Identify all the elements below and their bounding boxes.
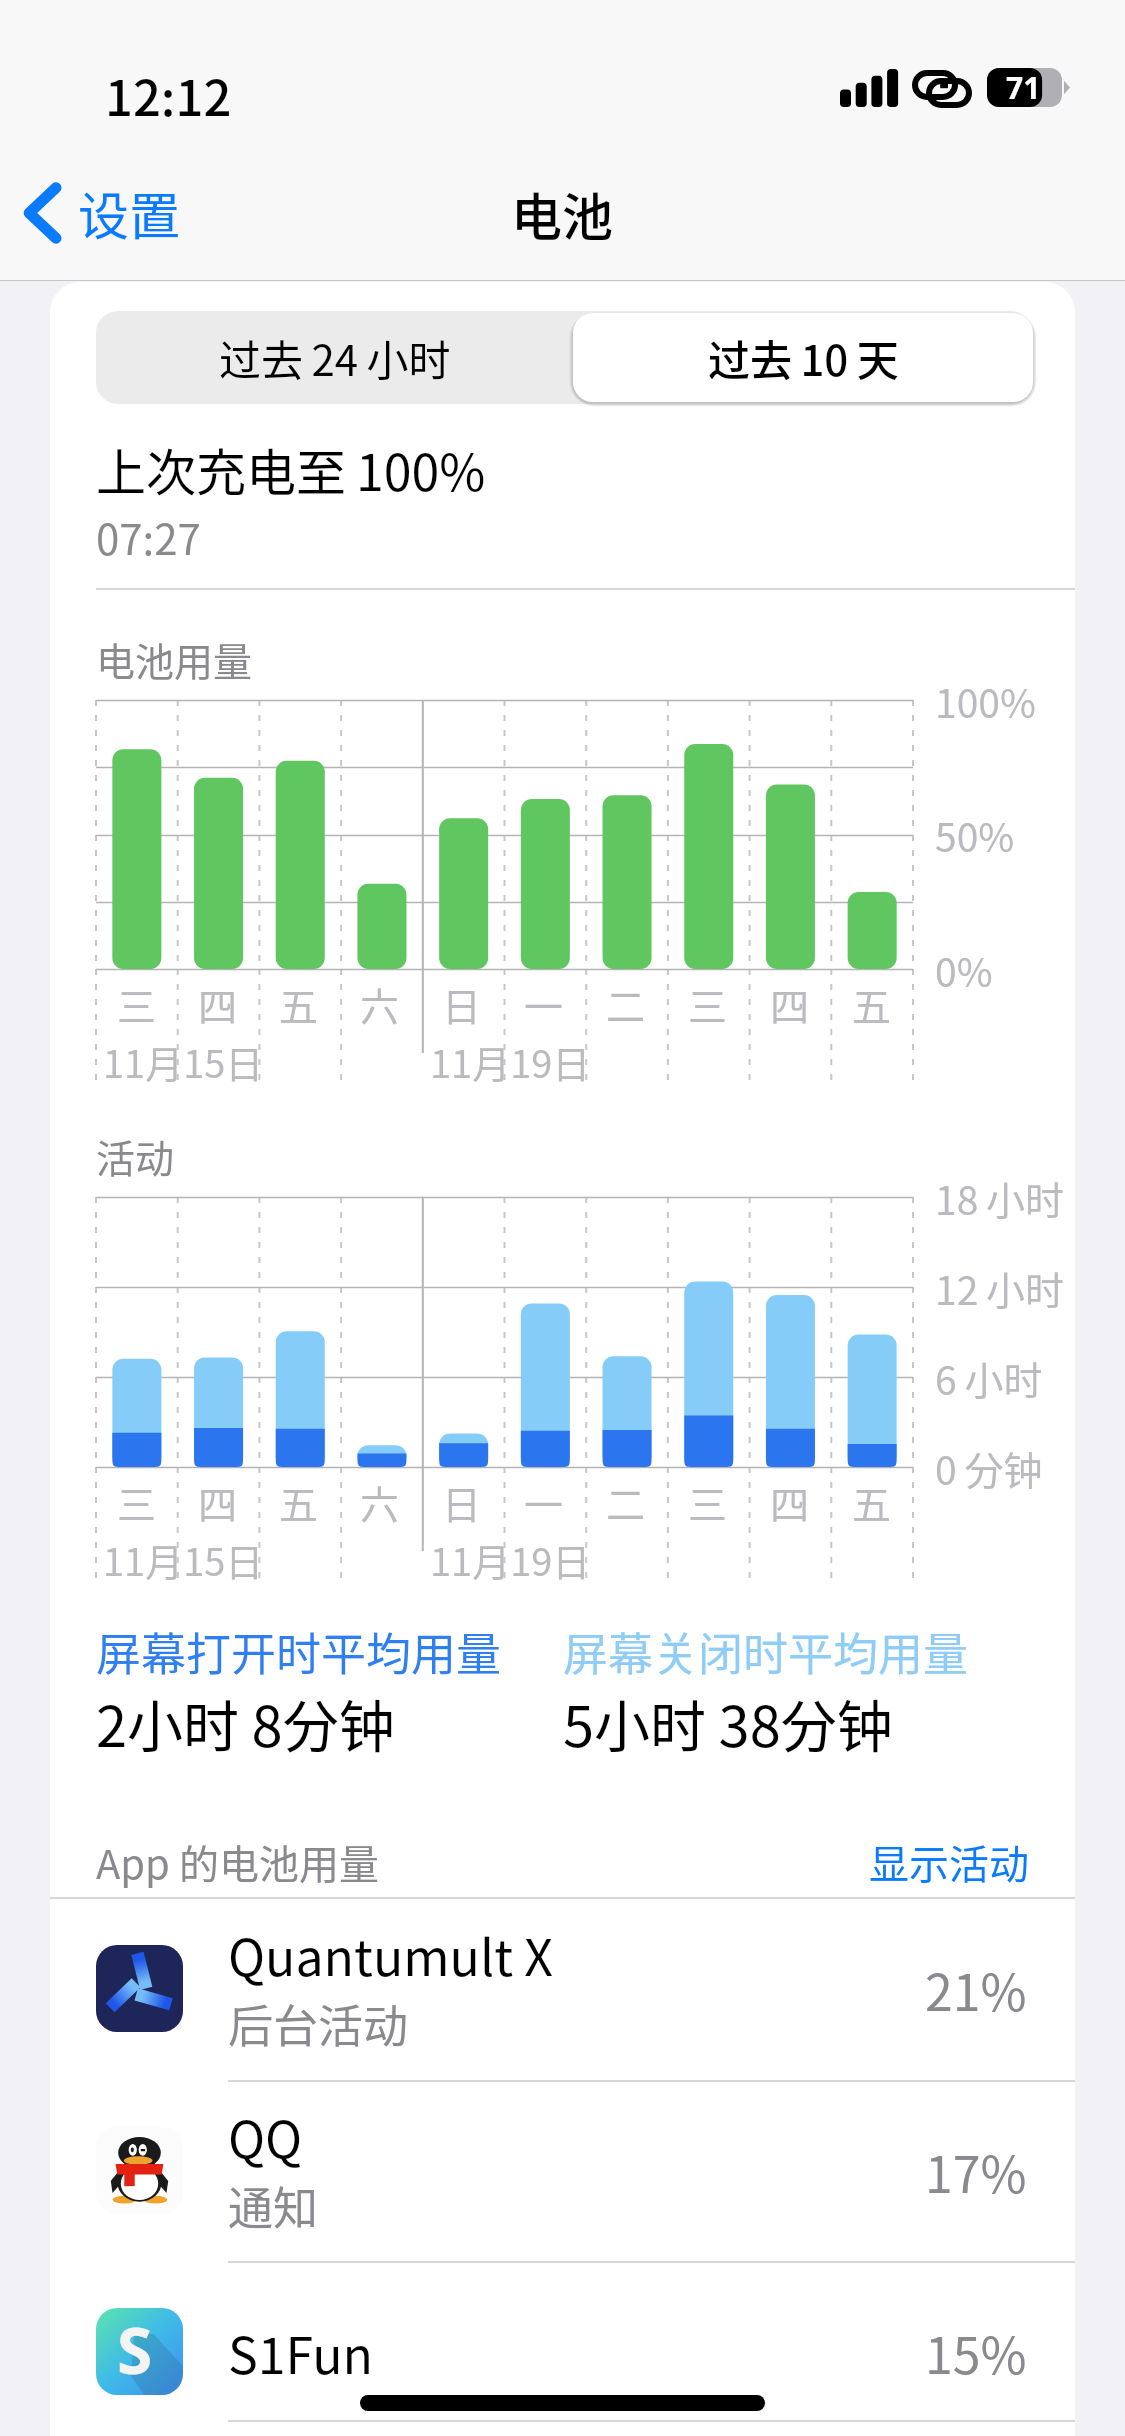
staticText: 0% (935, 942, 993, 998)
staticText: QQ (228, 2100, 303, 2172)
button[interactable]: S (50, 2261, 1075, 2436)
button[interactable]: Quantumult X (50, 1897, 1075, 2080)
staticText: Quantumult X (228, 1918, 553, 1990)
staticText: 四 (770, 976, 810, 1032)
button[interactable]: QQ (50, 2080, 1075, 2261)
staticText: 12 小时 (935, 1260, 1065, 1316)
staticText: 2小时 8分钟 (96, 1682, 395, 1763)
staticText: S1Fun (228, 2316, 374, 2388)
staticText: 五 (279, 976, 319, 1032)
staticText: 11月15日 (103, 1034, 264, 1089)
staticText: 12:12 (105, 59, 232, 130)
other: VPN (912, 70, 972, 108)
staticText: App 的电池用量 (96, 1833, 379, 1891)
staticText: 三 (117, 976, 157, 1032)
staticText: 11月19日 (430, 1532, 591, 1587)
staticText: 显示活动 (869, 1833, 1029, 1891)
staticText: 四 (198, 1474, 238, 1530)
button[interactable]: 过去 10 天 (573, 313, 1033, 402)
button[interactable]: 显示活动 (859, 1823, 1039, 1901)
staticText: 过去 10 天 (708, 327, 899, 388)
staticText: 21% (925, 1953, 1027, 2025)
staticText: 上次充电至 100% (96, 433, 486, 505)
staticText: S (117, 2308, 153, 2393)
staticText: 二 (606, 1474, 646, 1530)
staticText: 四 (198, 976, 238, 1032)
staticText: 0 分钟 (935, 1440, 1043, 1496)
staticText: 15% (925, 2316, 1027, 2388)
staticText: 六 (360, 1474, 400, 1530)
staticText: 五 (852, 976, 892, 1032)
staticText: 屏幕打开时平均用量 (96, 1619, 502, 1684)
staticText: 日 (442, 976, 482, 1032)
staticText: 11月15日 (103, 1532, 264, 1587)
staticText: 三 (688, 1474, 728, 1530)
staticText: 6 小时 (935, 1350, 1043, 1406)
staticText: 11月19日 (430, 1034, 591, 1089)
staticText: 三 (117, 1474, 157, 1530)
staticText: 18 小时 (935, 1170, 1065, 1226)
staticText: 100% (935, 673, 1036, 729)
staticText: 后台活动 (228, 1991, 409, 2056)
staticText: 二 (606, 976, 646, 1032)
staticText: 71 (1006, 67, 1041, 106)
staticText: 设置 (78, 176, 181, 250)
button[interactable]: 设置 (10, 163, 195, 263)
staticText: 电池 (511, 177, 614, 251)
staticText: 五 (852, 1474, 892, 1530)
other: Cellular signal (840, 69, 898, 107)
staticText: 六 (360, 976, 400, 1032)
staticText: 三 (688, 976, 728, 1032)
staticText: 过去 24 小时 (219, 327, 451, 388)
staticText: 50% (935, 807, 1015, 863)
staticText: 17% (925, 2135, 1027, 2207)
staticText: 5小时 38分钟 (563, 1682, 893, 1763)
staticText: 屏幕关闭时平均用量 (563, 1619, 969, 1684)
staticText: 一 (524, 1474, 564, 1530)
staticText: 通知 (228, 2173, 319, 2238)
staticText: 电池用量 (96, 631, 253, 687)
staticText: 四 (770, 1474, 810, 1530)
staticText: 五 (279, 1474, 319, 1530)
staticText: 活动 (96, 1128, 175, 1184)
staticText: 07:27 (96, 506, 201, 567)
staticText: 日 (442, 1474, 482, 1530)
staticText: 一 (524, 976, 564, 1032)
button[interactable]: 过去 24 小时 (96, 311, 573, 404)
